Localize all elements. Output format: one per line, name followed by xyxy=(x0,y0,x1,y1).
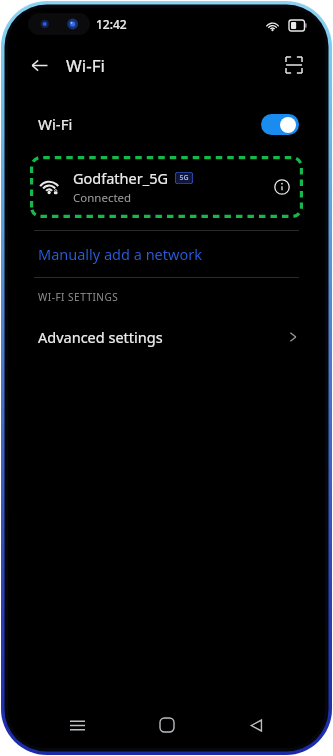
button[interactable]: Home xyxy=(147,705,187,745)
button[interactable]: Back xyxy=(236,705,276,745)
button[interactable]: Recent apps xyxy=(57,705,97,745)
button[interactable]: Godfather_5G xyxy=(30,156,303,218)
button[interactable]: Manually add a network xyxy=(8,231,325,277)
staticText: Wi-Fi xyxy=(66,54,105,77)
staticText: Connected xyxy=(73,190,132,206)
staticText: 5G xyxy=(179,173,189,183)
button[interactable]: Advanced settings xyxy=(8,316,325,358)
button[interactable]: Network details xyxy=(267,172,297,202)
button[interactable]: Back xyxy=(22,48,56,82)
staticText: WI-FI SETTINGS xyxy=(38,290,119,304)
staticText: Wi-Fi xyxy=(38,114,73,134)
staticText: Manually add a network xyxy=(38,244,202,264)
button[interactable]: Wi-Fi on xyxy=(261,114,299,135)
staticText: Godfather_5G xyxy=(73,168,169,188)
staticText: 12:42 xyxy=(96,16,127,32)
staticText: Advanced settings xyxy=(38,327,163,347)
button[interactable]: Wi-Fi xyxy=(8,102,325,146)
button[interactable]: Scan QR code xyxy=(277,48,311,82)
